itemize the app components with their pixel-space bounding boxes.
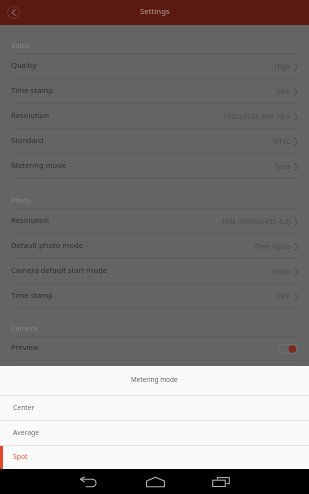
staticText: Quality — [11, 60, 37, 70]
staticText: NTSC — [273, 136, 291, 146]
staticText: Camera default start mode — [11, 265, 107, 275]
staticText: Camera — [11, 323, 38, 333]
staticText: Metering mode — [11, 160, 67, 170]
staticText: Default photo mode — [11, 240, 83, 250]
staticText: Settings — [140, 6, 170, 17]
button[interactable]: Quality — [0, 54, 309, 79]
button[interactable]: Resolution — [0, 104, 309, 129]
button[interactable]: Home — [133, 469, 177, 494]
button[interactable]: Camera default start mode — [0, 259, 309, 284]
button[interactable]: Preview — [0, 337, 309, 361]
button[interactable]: Time stamp — [0, 284, 309, 309]
staticText: 16M (4608x3456 4:3) — [221, 216, 291, 226]
staticText: Average — [13, 428, 40, 437]
staticText: Preview — [11, 342, 39, 352]
staticText: Photo — [11, 195, 32, 205]
staticText: Time stamp — [11, 290, 53, 300]
button[interactable]: Resolution — [0, 209, 309, 234]
button[interactable]: Standard — [0, 129, 309, 154]
staticText: High — [274, 61, 291, 71]
staticText: Resolution — [11, 110, 49, 120]
staticText: OFF — [277, 86, 291, 96]
staticText: Time lapse — [254, 241, 291, 251]
button[interactable]: Time stamp — [0, 79, 309, 104]
button[interactable]: Spot — [0, 446, 309, 469]
staticText: Standard — [11, 135, 44, 145]
staticText: Center — [13, 403, 35, 412]
staticText: Time stamp — [11, 85, 53, 95]
staticText: Metering mode — [131, 375, 178, 384]
button[interactable]: Back — [7, 6, 20, 19]
button[interactable]: Center — [0, 396, 309, 420]
button[interactable]: Default photo mode — [0, 234, 309, 259]
staticText: Video — [11, 40, 30, 50]
staticText: Video — [272, 266, 291, 276]
button[interactable]: Back — [66, 469, 110, 494]
button[interactable]: Average — [0, 421, 309, 445]
staticText: Spot — [275, 161, 291, 171]
button[interactable]: Metering mode — [0, 154, 309, 179]
staticText: OFF — [277, 291, 291, 301]
staticText: Resolution — [11, 215, 49, 225]
staticText: 1920x1080 60P 16:9 — [223, 111, 291, 121]
button[interactable]: Recent apps — [199, 469, 243, 494]
staticText: Spot — [13, 452, 28, 461]
